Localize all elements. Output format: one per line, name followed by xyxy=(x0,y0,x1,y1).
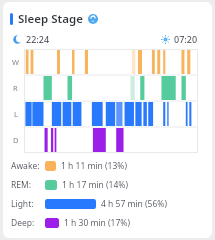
staticText: W xyxy=(12,57,19,67)
button[interactable] xyxy=(24,49,198,153)
button[interactable]: Sleep Stage xyxy=(10,11,212,27)
staticText: Deep: xyxy=(11,217,35,229)
button[interactable]: REM: xyxy=(11,179,206,191)
staticText: REM: xyxy=(11,179,32,191)
staticText: Awake: xyxy=(11,160,40,172)
staticText: 1 h 11 min (13%) xyxy=(61,160,127,172)
button[interactable]: Light: xyxy=(11,198,206,210)
staticText: D xyxy=(13,135,19,145)
staticText: 22:24 xyxy=(26,33,50,45)
button[interactable]: Deep: xyxy=(11,217,206,229)
staticText: R xyxy=(13,83,18,93)
staticText: Sleep Stage xyxy=(18,11,83,27)
button[interactable]: Awake: xyxy=(11,160,206,172)
button[interactable]: Help about sleep stages xyxy=(88,14,98,24)
staticText: 1 h 17 min (14%) xyxy=(62,179,128,191)
staticText: Light: xyxy=(11,198,34,210)
staticText: 4 h 57 min (56%) xyxy=(101,198,167,210)
staticText: 1 h 30 min (17%) xyxy=(64,217,130,229)
staticText: 07:20 xyxy=(174,33,198,45)
staticText: L xyxy=(14,109,18,119)
